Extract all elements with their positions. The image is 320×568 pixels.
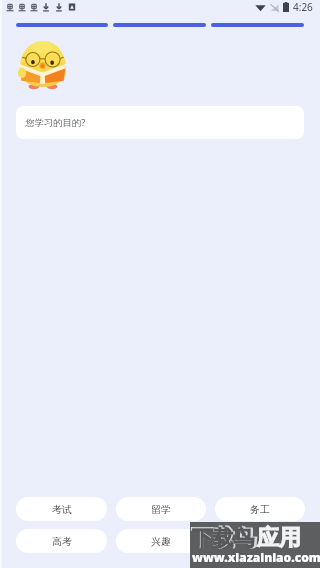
- button[interactable]: 兴趣: [116, 529, 206, 553]
- staticText: 下载鸟: [191, 524, 257, 552]
- staticText: www.xiazainiao.com: [192, 549, 320, 565]
- button[interactable]: 高考: [16, 529, 107, 553]
- staticText: 留学: [151, 503, 171, 516]
- button[interactable]: 您学习的目的?: [16, 106, 304, 139]
- staticText: 高考: [52, 535, 72, 548]
- staticText: 考试: [52, 503, 72, 516]
- button[interactable]: 务工: [215, 497, 305, 521]
- staticText: 下载鸟: [192, 525, 255, 551]
- other: Assistant avatar: [18, 40, 68, 92]
- button[interactable]: 留学: [116, 497, 206, 521]
- staticText: 务工: [250, 503, 270, 516]
- staticText: 兴趣: [151, 535, 171, 548]
- other: Step progress 3 of 3: [16, 19, 304, 31]
- staticText: 4:26: [293, 0, 313, 14]
- staticText: 您学习的目的?: [25, 116, 86, 129]
- staticText: 应用: [257, 524, 301, 552]
- button[interactable]: 考试: [16, 497, 107, 521]
